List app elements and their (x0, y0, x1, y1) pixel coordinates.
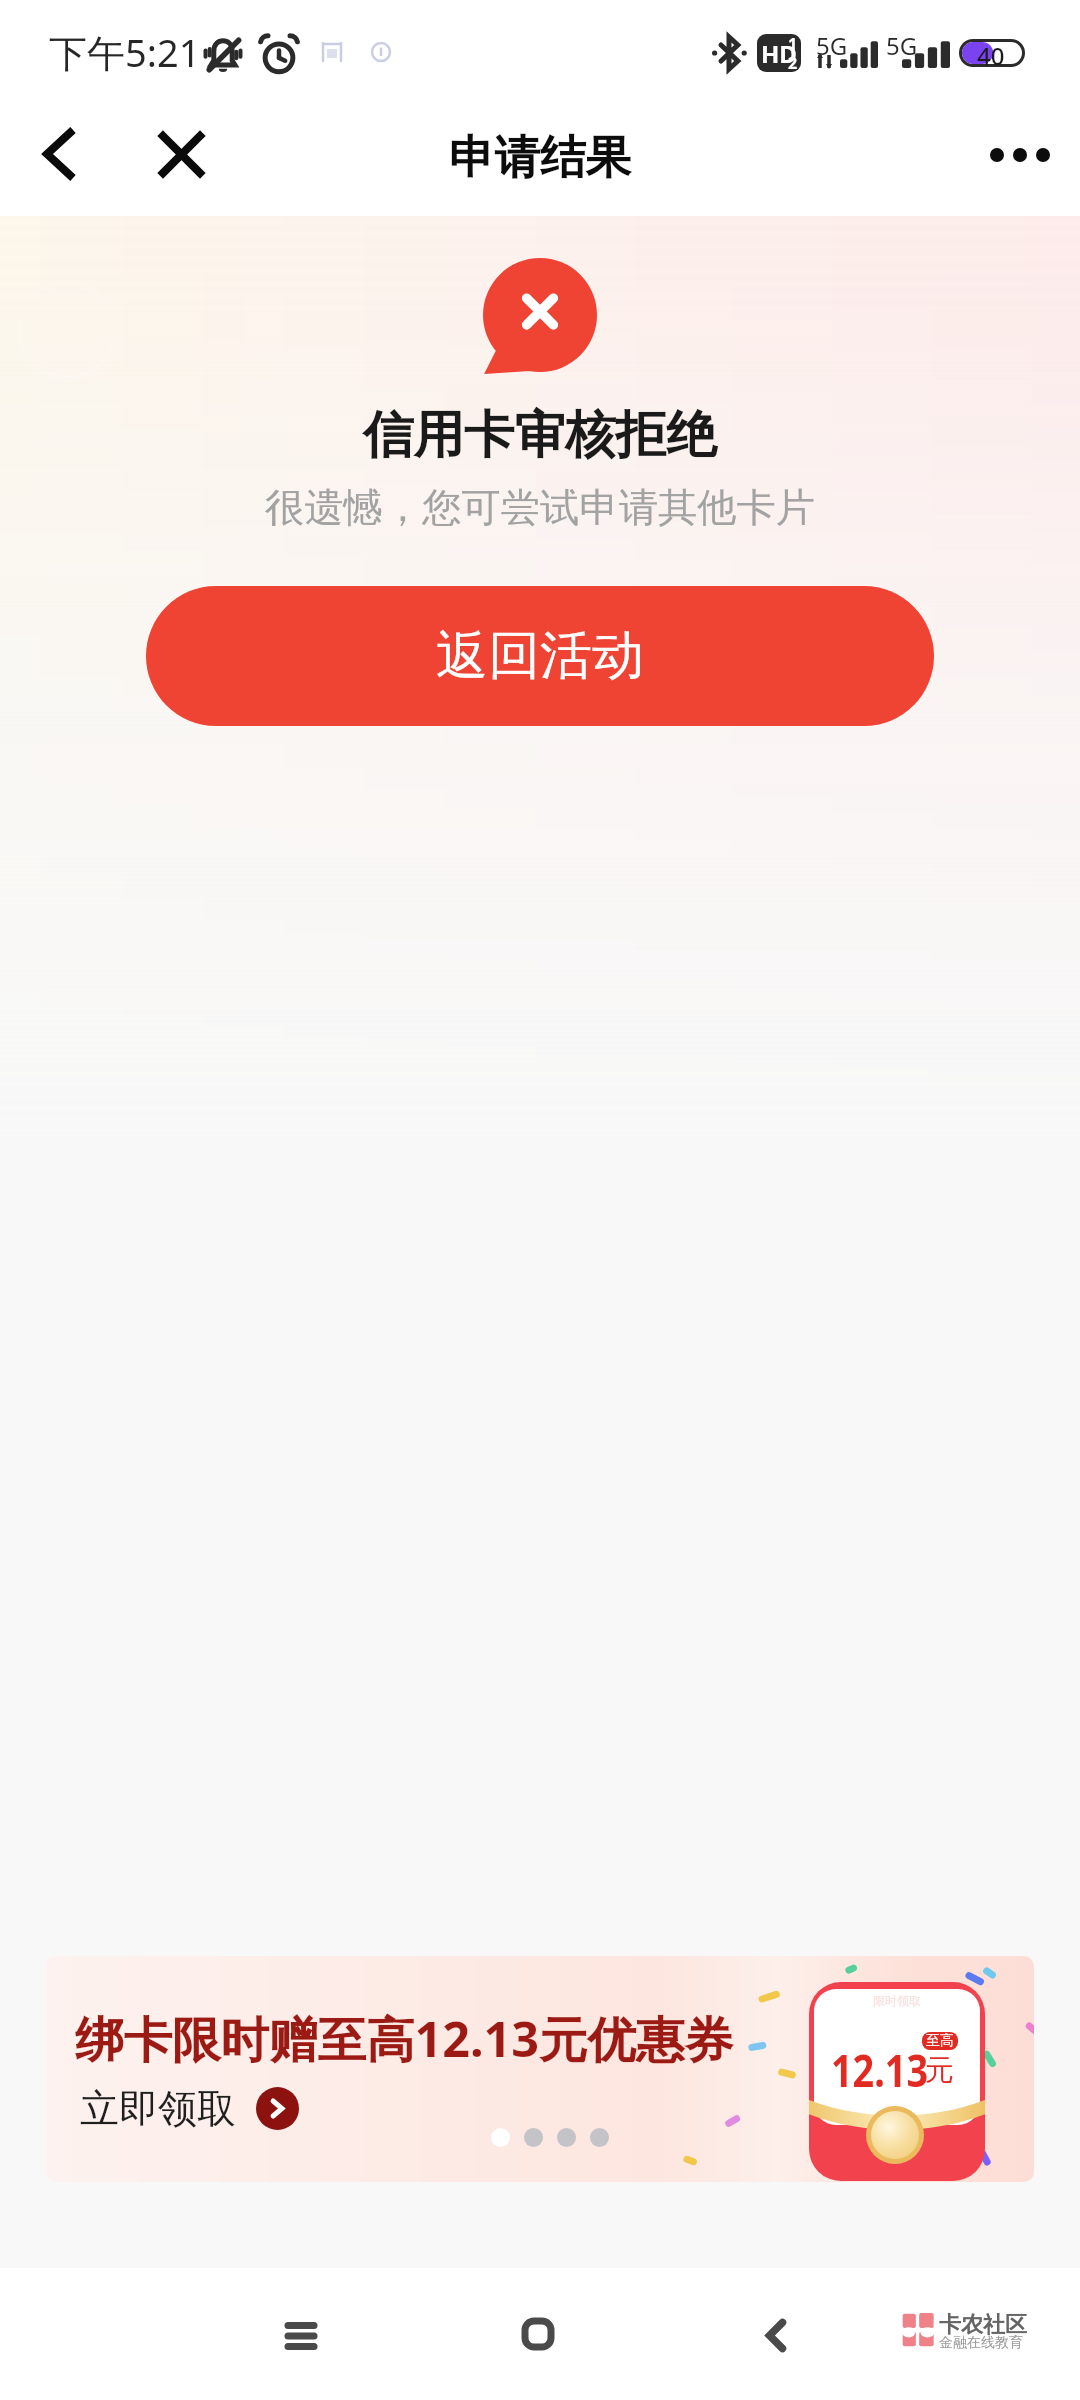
staticText: 40 (977, 39, 1005, 67)
staticText: 金融在线教育 (939, 2334, 1023, 2352)
staticText: 卡农社区 (939, 2311, 1027, 2339)
staticText: 下午5:21 (49, 26, 201, 78)
staticText: 至高 (926, 2032, 954, 2050)
button[interactable]: Home (498, 2294, 578, 2374)
button[interactable]: Close (141, 114, 221, 194)
button[interactable]: More options (970, 105, 1070, 205)
staticText: 绑卡限时赠至高12.13元优惠券 (75, 2005, 734, 2071)
staticText: 12.13 (831, 2039, 928, 2100)
staticText: 元 (925, 2052, 954, 2089)
button[interactable]: Back (20, 114, 100, 194)
button[interactable]: Recent apps (261, 2296, 341, 2376)
staticText: 申请结果 (449, 129, 631, 186)
staticText: HD (761, 37, 797, 70)
staticText: 返回活动 (436, 623, 644, 689)
button[interactable]: Page 4 (590, 2128, 609, 2147)
button[interactable]: 返回活动 (146, 586, 934, 726)
staticText: 信用卡审核拒绝 (363, 403, 717, 467)
button[interactable]: Page 3 (557, 2128, 576, 2147)
button[interactable]: Back (736, 2295, 816, 2375)
staticText: 立即领取 (80, 2084, 236, 2133)
button[interactable]: 绑卡限时赠至高12.13元优惠券 (46, 1956, 1034, 2182)
staticText: 5G (886, 29, 918, 62)
staticText: 限时领取 (873, 1993, 921, 2008)
staticText: 5G (816, 29, 848, 62)
button[interactable]: Page 2 (524, 2128, 543, 2147)
button[interactable]: 立即领取 (80, 2084, 299, 2133)
staticText: 2 (788, 52, 798, 72)
staticText: 很遗憾，您可尝试申请其他卡片 (265, 483, 816, 533)
staticText: 1 (788, 34, 798, 55)
button[interactable]: Page 1 (491, 2128, 510, 2147)
